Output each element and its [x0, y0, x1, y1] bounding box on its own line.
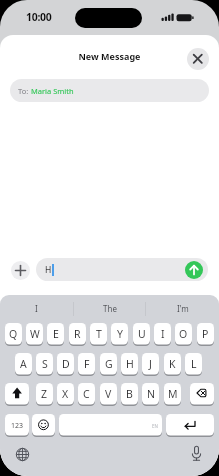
staticText: Q — [9, 327, 18, 341]
button[interactable]: I — [0, 300, 73, 317]
button[interactable]: U — [133, 323, 150, 346]
staticText: V — [105, 387, 112, 401]
button[interactable]: V — [100, 383, 117, 406]
button[interactable] — [11, 261, 30, 280]
button[interactable]: H — [121, 353, 138, 376]
button[interactable] — [32, 414, 55, 437]
button[interactable]: Y — [111, 323, 128, 346]
staticText: H — [126, 357, 134, 371]
button[interactable]: F — [78, 353, 95, 376]
staticText: E — [53, 327, 59, 341]
button[interactable]: EN — [59, 414, 162, 437]
button[interactable]: T — [90, 323, 107, 346]
staticText: I — [35, 303, 38, 314]
button[interactable]: N — [142, 383, 159, 406]
staticText: A — [20, 357, 27, 371]
staticText: G — [105, 357, 113, 371]
button[interactable]: J — [142, 353, 159, 376]
staticText: U — [138, 327, 146, 341]
button[interactable]: D — [57, 353, 74, 376]
staticText: H — [45, 264, 52, 276]
staticText: T — [96, 327, 102, 341]
button[interactable]: O — [175, 323, 192, 346]
staticText: K — [169, 357, 176, 371]
button[interactable]: B — [121, 383, 138, 406]
staticText: 123 — [11, 421, 24, 431]
staticText: 10:00 — [26, 10, 52, 24]
staticText: X — [62, 387, 69, 401]
staticText: P — [202, 327, 209, 341]
button[interactable] — [190, 383, 214, 406]
button[interactable]: L — [185, 353, 202, 376]
staticText: EN — [152, 423, 158, 429]
button[interactable]: S — [36, 353, 53, 376]
button[interactable] — [188, 445, 205, 462]
button[interactable]: Q — [5, 323, 22, 346]
staticText: J — [149, 357, 152, 371]
staticText: To: — [18, 86, 29, 96]
button[interactable]: R — [69, 323, 86, 346]
button[interactable]: X — [57, 383, 74, 406]
button[interactable]: I'm — [146, 300, 219, 317]
button[interactable]: G — [100, 353, 117, 376]
staticText: Y — [117, 327, 123, 341]
button[interactable] — [187, 48, 209, 70]
staticText: I'm — [177, 303, 189, 314]
staticText: W — [30, 327, 40, 341]
button[interactable]: C — [78, 383, 95, 406]
button[interactable]: 123 — [5, 414, 29, 437]
staticText: The — [103, 303, 117, 314]
button[interactable]: K — [164, 353, 181, 376]
button[interactable]: P — [197, 323, 214, 346]
button[interactable]: E — [47, 323, 64, 346]
button[interactable]: To: — [10, 79, 209, 102]
staticText: B — [126, 387, 133, 401]
staticText: N — [147, 387, 155, 401]
staticText: M — [168, 387, 178, 401]
button[interactable] — [185, 261, 203, 279]
button[interactable]: M — [164, 383, 181, 406]
staticText: S — [42, 357, 48, 371]
button[interactable] — [14, 446, 31, 463]
staticText: D — [62, 357, 70, 371]
button[interactable] — [5, 383, 29, 406]
staticText: R — [74, 327, 81, 341]
staticText: New Message — [0, 50, 219, 62]
staticText: F — [84, 357, 90, 371]
staticText: O — [179, 327, 188, 341]
staticText: L — [191, 357, 197, 371]
staticText: I — [161, 327, 165, 341]
button[interactable]: A — [15, 353, 32, 376]
staticText: Z — [41, 387, 48, 401]
button[interactable] — [166, 414, 214, 437]
button[interactable]: Z — [36, 383, 53, 406]
button[interactable]: W — [26, 323, 43, 346]
staticText: C — [83, 387, 90, 401]
button[interactable]: The — [73, 300, 146, 317]
button[interactable]: I — [154, 323, 171, 346]
staticText: Maria Smith — [31, 86, 74, 96]
